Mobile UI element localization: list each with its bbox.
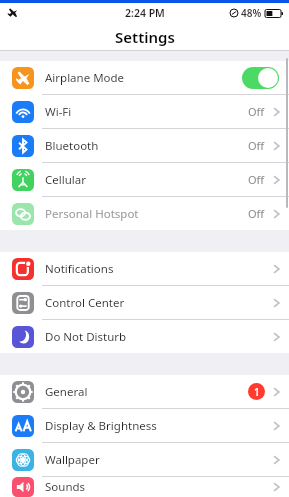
other: Cellular bbox=[12, 169, 34, 191]
other: General bbox=[12, 381, 34, 403]
other: Airplane Mode bbox=[12, 67, 34, 89]
staticText: Personal Hotspot bbox=[45, 206, 139, 222]
staticText: Off bbox=[248, 138, 265, 153]
staticText: Sounds bbox=[45, 479, 86, 495]
button[interactable]: Control Center bbox=[0, 286, 289, 319]
staticText: Display & Brightness bbox=[45, 418, 157, 434]
other: Wi-Fi bbox=[12, 101, 34, 123]
staticText: Wi-Fi bbox=[45, 104, 72, 120]
other: Display and Brightness bbox=[12, 415, 34, 437]
staticText: Cellular bbox=[45, 172, 86, 188]
staticText: 2:24 PM bbox=[125, 6, 165, 20]
staticText: Do Not Disturb bbox=[45, 329, 127, 345]
staticText: Off bbox=[248, 104, 265, 119]
button[interactable]: Cellular bbox=[0, 163, 289, 196]
other: Control Center bbox=[12, 292, 34, 314]
button[interactable]: Bluetooth bbox=[0, 129, 289, 162]
staticText: Notifications bbox=[45, 261, 114, 277]
staticText: Settings bbox=[115, 27, 175, 47]
button[interactable] bbox=[242, 67, 279, 89]
other: Do Not Disturb bbox=[12, 326, 34, 348]
staticText: 48% bbox=[241, 6, 262, 20]
button[interactable]: Airplane Mode bbox=[0, 61, 289, 94]
button[interactable]: Notifications bbox=[0, 252, 289, 285]
staticText: Airplane Mode bbox=[45, 70, 125, 86]
button[interactable]: Do Not Disturb bbox=[0, 320, 289, 353]
other: Bluetooth bbox=[12, 135, 34, 157]
other: Sounds bbox=[12, 477, 34, 497]
staticText: Control Center bbox=[45, 295, 125, 311]
staticText: Off bbox=[248, 206, 265, 221]
other: Wallpaper bbox=[12, 449, 34, 471]
other: Notifications bbox=[12, 258, 34, 280]
staticText: General bbox=[45, 384, 88, 400]
button[interactable]: General bbox=[0, 375, 289, 408]
staticText: 1 bbox=[254, 385, 260, 399]
staticText: Bluetooth bbox=[45, 138, 99, 154]
button[interactable]: Sounds bbox=[0, 477, 289, 497]
other: Personal Hotspot bbox=[12, 203, 34, 225]
button[interactable]: Display and Brightness bbox=[0, 409, 289, 442]
button[interactable]: Wallpaper bbox=[0, 443, 289, 476]
staticText: Wallpaper bbox=[45, 452, 100, 468]
staticText: Off bbox=[248, 172, 265, 187]
button[interactable]: Personal Hotspot bbox=[0, 197, 289, 230]
button[interactable]: Wi-Fi bbox=[0, 95, 289, 128]
